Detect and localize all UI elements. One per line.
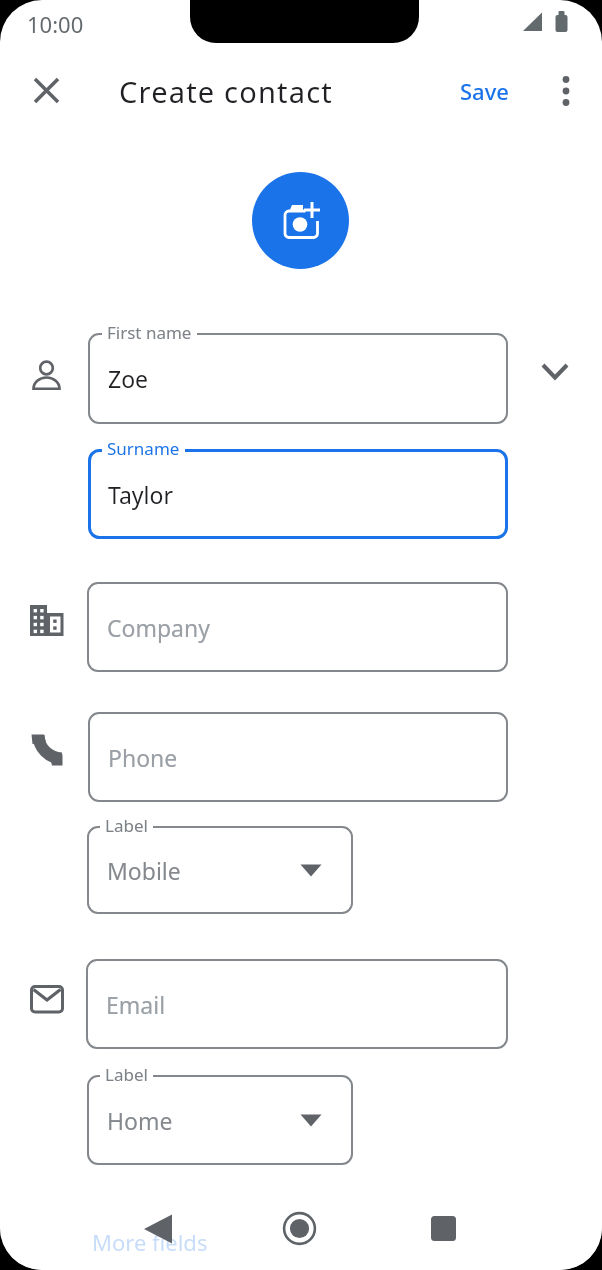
staticText: 10:00: [27, 9, 84, 39]
button[interactable]: [548, 72, 584, 110]
staticText: Taylor: [108, 479, 173, 510]
button[interactable]: [29, 73, 65, 109]
staticText: First name: [107, 321, 192, 344]
button[interactable]: Company: [87, 582, 508, 672]
button[interactable]: Taylor: [88, 449, 508, 539]
button[interactable]: Phone: [88, 712, 508, 802]
staticText: Phone: [108, 742, 178, 773]
button[interactable]: [276, 1205, 322, 1251]
button[interactable]: More fields: [80, 1216, 228, 1268]
button[interactable]: [136, 1206, 182, 1252]
staticText: Company: [107, 612, 210, 643]
staticText: Email: [106, 989, 166, 1020]
staticText: Label: [105, 1063, 148, 1086]
button[interactable]: [420, 1205, 466, 1251]
button[interactable]: Zoe: [88, 333, 508, 424]
staticText: Zoe: [108, 363, 149, 394]
staticText: Save: [460, 76, 509, 106]
button[interactable]: Mobile: [87, 826, 353, 914]
staticText: Mobile: [107, 855, 181, 886]
staticText: Surname: [107, 437, 180, 460]
button[interactable]: [252, 172, 349, 269]
staticText: Label: [105, 814, 148, 837]
staticText: More fields: [92, 1227, 208, 1257]
button[interactable]: Save: [444, 72, 524, 110]
button[interactable]: [537, 354, 579, 390]
button[interactable]: Email: [86, 959, 508, 1049]
staticText: Create contact: [119, 72, 334, 111]
button[interactable]: Home: [87, 1075, 353, 1165]
staticText: Home: [107, 1105, 173, 1136]
